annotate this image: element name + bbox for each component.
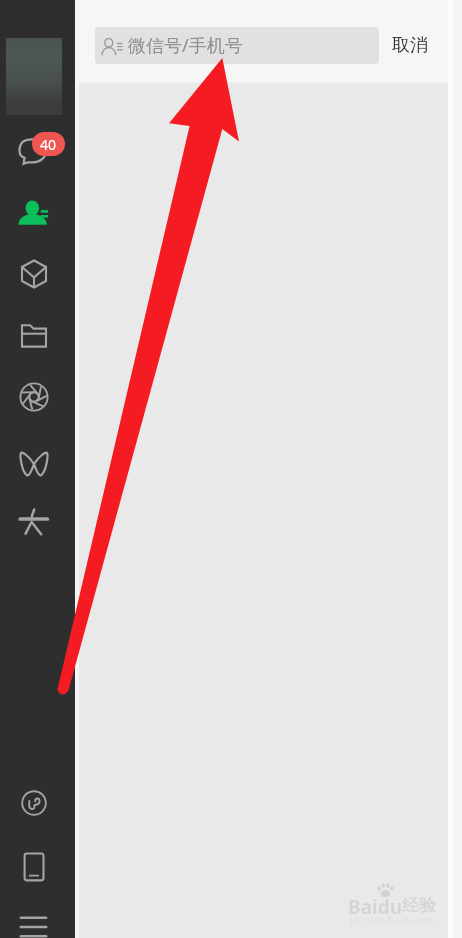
- button[interactable]: Contacts: [14, 193, 54, 233]
- button[interactable]: Top Stories: [14, 500, 54, 540]
- button[interactable]: 微信号/手机号: [95, 27, 379, 64]
- button[interactable]: Menu: [14, 907, 54, 938]
- button[interactable]: Mini Programs: [14, 783, 54, 823]
- button[interactable]: Moments: [14, 377, 54, 417]
- staticText: 取消: [392, 34, 428, 57]
- button[interactable]: Favorites: [14, 254, 54, 294]
- button[interactable]: Chats: [10, 128, 66, 170]
- staticText: Baidu: [348, 894, 403, 920]
- button[interactable]: 取消: [388, 27, 432, 64]
- staticText: 40: [40, 135, 57, 154]
- button[interactable]: Profile avatar: [6, 38, 62, 115]
- button[interactable]: Phone: [14, 847, 54, 887]
- staticText: 经验: [402, 895, 436, 916]
- staticText: jingyan.baidu.com: [350, 913, 437, 927]
- staticText: 微信号/手机号: [128, 33, 243, 58]
- button[interactable]: Channels: [14, 444, 54, 484]
- button[interactable]: Files: [14, 316, 54, 356]
